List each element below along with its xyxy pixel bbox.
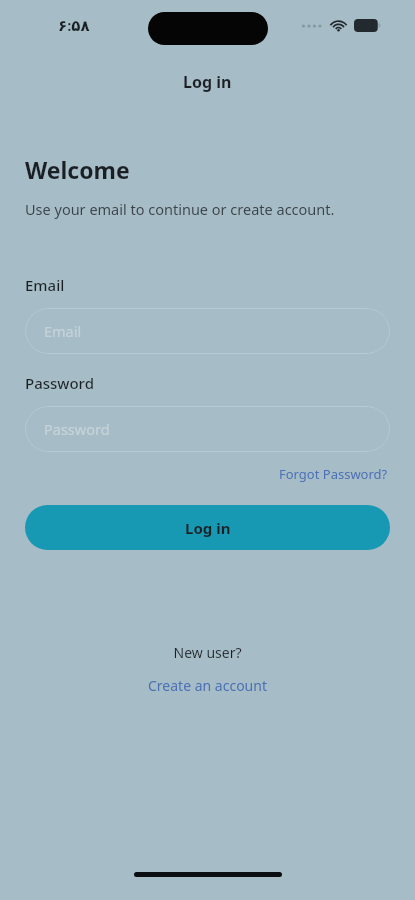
staticText: Welcome — [25, 154, 130, 185]
staticText: Email — [44, 321, 82, 341]
staticText: Use your email to continue or create acc… — [25, 199, 335, 219]
staticText: Log in — [183, 71, 232, 93]
button[interactable]: Password — [25, 406, 390, 452]
staticText: Forgot Password? — [279, 465, 388, 483]
staticText: ۶:۵۸ — [58, 15, 90, 35]
staticText: Password — [25, 373, 94, 393]
button[interactable]: Create an account — [142, 673, 273, 698]
staticText: Log in — [185, 518, 231, 538]
staticText: Email — [25, 275, 65, 295]
staticText: New user? — [173, 643, 242, 662]
staticText: Create an account — [148, 676, 267, 695]
button[interactable]: Log in — [25, 505, 390, 550]
button[interactable]: Email — [25, 308, 390, 354]
button[interactable]: Forgot Password? — [277, 462, 390, 486]
staticText: Password — [44, 419, 110, 439]
